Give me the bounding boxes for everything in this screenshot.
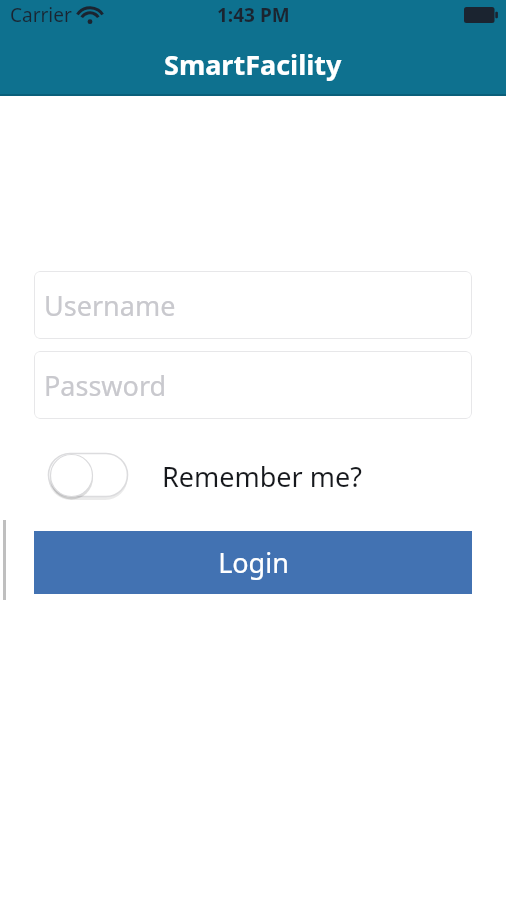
staticText: Username <box>44 287 176 324</box>
staticText: Login <box>218 544 289 581</box>
staticText: Password <box>44 367 167 404</box>
button[interactable]: Password <box>34 351 472 419</box>
button[interactable]: Login <box>34 531 472 594</box>
staticText: 1:43 PM <box>217 2 290 28</box>
button[interactable]: Remember me toggle <box>48 453 362 499</box>
staticText: Remember me? <box>162 458 362 495</box>
button[interactable]: Username <box>34 271 472 339</box>
button[interactable]: Remember me toggle <box>48 453 128 499</box>
staticText: Carrier <box>10 2 72 28</box>
staticText: SmartFacility <box>164 46 342 83</box>
